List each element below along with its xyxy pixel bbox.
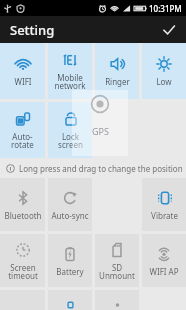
button[interactable]: Auto-sync xyxy=(48,178,92,231)
button[interactable]: SD Unmount xyxy=(95,234,139,287)
staticText: Battery xyxy=(56,266,84,277)
staticText: Ringer xyxy=(105,76,130,87)
staticText: SD Unmount xyxy=(99,262,135,281)
button[interactable]: Low xyxy=(142,43,186,99)
staticText: Bluetooth xyxy=(4,210,42,221)
staticText: Lock screen xyxy=(58,131,83,150)
button[interactable]: Bluetooth xyxy=(0,178,45,231)
button[interactable]: Vibrate xyxy=(142,178,186,231)
staticText: Auto-sync xyxy=(51,210,89,221)
button[interactable]: Done xyxy=(152,16,186,43)
button[interactable]: WIFI AP xyxy=(142,234,186,287)
button[interactable]: Mobile network xyxy=(48,43,92,99)
staticText: 10:31PM xyxy=(149,3,182,14)
staticText: Screen timeout xyxy=(8,262,38,281)
staticText: Auto- rotate xyxy=(11,131,34,150)
button[interactable]: Auto- rotate xyxy=(0,102,45,158)
button[interactable]: Lock screen xyxy=(48,102,92,158)
staticText: WIFI AP xyxy=(149,266,179,277)
button[interactable]: WIFI xyxy=(0,43,45,99)
button[interactable] xyxy=(48,290,92,310)
staticText: Long press and drag to change the positi… xyxy=(19,163,183,174)
button[interactable]: Ringer xyxy=(95,43,139,99)
button[interactable]: GPS tile being dragged xyxy=(72,90,128,156)
button[interactable] xyxy=(95,290,139,310)
button[interactable]: Battery xyxy=(48,234,92,287)
staticText: GPS xyxy=(92,125,109,137)
staticText: Setting xyxy=(10,21,55,39)
staticText: Vibrate xyxy=(151,210,178,221)
staticText: WIFI xyxy=(14,76,32,87)
staticText: Low xyxy=(156,76,172,87)
staticText: Mobile network xyxy=(54,72,86,91)
button[interactable]: Screen timeout xyxy=(0,234,45,287)
